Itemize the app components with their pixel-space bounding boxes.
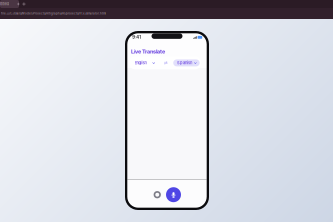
staticText: ntitled xyxy=(0,2,9,6)
staticText: Spanish xyxy=(177,60,192,65)
staticText: Live Translate xyxy=(131,48,165,55)
staticText: 9:41 xyxy=(132,35,141,40)
button[interactable]: Swap languages xyxy=(164,61,168,65)
button[interactable]: Spanish xyxy=(173,59,200,66)
staticText: English xyxy=(135,60,147,65)
button[interactable]: ntitled xyxy=(0,0,19,8)
button[interactable]: English xyxy=(130,59,158,66)
button[interactable]: New tab xyxy=(19,0,28,8)
staticText: file:///C:/Users/Model/Projects/Artigrap… xyxy=(1,12,106,15)
button[interactable]: Stop xyxy=(152,190,162,199)
button[interactable]: Record xyxy=(166,187,181,202)
